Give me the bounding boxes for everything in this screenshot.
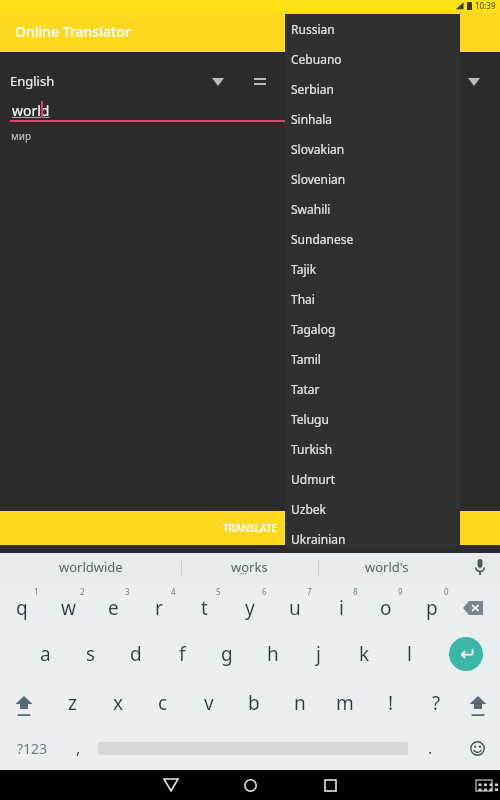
- button[interactable]: Shift: [2, 687, 46, 725]
- button[interactable]: Telugu: [285, 404, 460, 434]
- button[interactable]: 3: [102, 575, 152, 607]
- button[interactable]: c: [138, 687, 188, 719]
- button[interactable]: Tatar: [285, 374, 460, 404]
- button[interactable]: 0: [421, 575, 471, 607]
- button[interactable]: f: [157, 638, 207, 670]
- button[interactable]: world's: [319, 553, 454, 581]
- button[interactable]: Slovakian: [285, 134, 460, 164]
- button[interactable]: Slovenian: [285, 164, 460, 194]
- button[interactable]: Swap languages: [246, 68, 274, 94]
- staticText: o: [380, 595, 392, 621]
- button[interactable]: Udmurt: [285, 464, 460, 494]
- staticText: Slovenian: [291, 171, 346, 187]
- button[interactable]: 6: [239, 575, 289, 607]
- staticText: Online Translator: [15, 22, 131, 41]
- button[interactable]: works: [182, 553, 317, 581]
- staticText: Uzbek: [291, 501, 326, 517]
- button[interactable]: x: [93, 687, 143, 719]
- button[interactable]: p: [407, 592, 457, 624]
- staticText: u: [289, 595, 301, 621]
- button[interactable]: Uzbek: [285, 494, 460, 524]
- button[interactable]: Backspace: [450, 590, 495, 626]
- button[interactable]: n: [275, 687, 325, 719]
- button[interactable]: .: [410, 732, 450, 764]
- button[interactable]: English: [10, 68, 230, 94]
- staticText: p: [426, 595, 438, 621]
- button[interactable]: Sinhala: [285, 104, 460, 134]
- button[interactable]: ?: [411, 687, 461, 719]
- button[interactable]: 2: [57, 575, 107, 607]
- staticText: h: [267, 641, 279, 667]
- button[interactable]: Ukrainian: [285, 524, 460, 554]
- button[interactable]: g: [202, 638, 252, 670]
- button[interactable]: i: [316, 592, 366, 624]
- button[interactable]: Turkish: [285, 434, 460, 464]
- staticText: Tatar: [291, 381, 320, 397]
- button[interactable]: Enter: [449, 637, 483, 671]
- button[interactable]: e: [88, 592, 138, 624]
- button[interactable]: 5: [193, 575, 243, 607]
- button[interactable]: h: [248, 638, 298, 670]
- button[interactable]: 1: [11, 575, 61, 607]
- staticText: 4: [171, 586, 176, 597]
- button[interactable]: ?123: [2, 732, 62, 764]
- button[interactable]: TRANSLATE: [0, 511, 500, 545]
- staticText: Serbian: [291, 81, 334, 97]
- button[interactable]: v: [184, 687, 234, 719]
- button[interactable]: 8: [330, 575, 380, 607]
- button[interactable]: 7: [284, 575, 334, 607]
- button[interactable]: t: [179, 592, 229, 624]
- button[interactable]: l: [384, 638, 434, 670]
- button[interactable]: w: [43, 592, 93, 624]
- button[interactable]: Swahili: [285, 194, 460, 224]
- button[interactable]: ,: [56, 732, 100, 764]
- button[interactable]: Recents: [309, 770, 351, 800]
- button[interactable]: u: [270, 592, 320, 624]
- staticText: x: [113, 690, 124, 716]
- button[interactable]: 4: [148, 575, 198, 607]
- button[interactable]: Tagalog: [285, 314, 460, 344]
- staticText: r: [155, 595, 163, 621]
- button[interactable]: a: [20, 638, 70, 670]
- button[interactable]: Tamil: [285, 344, 460, 374]
- button[interactable]: y: [225, 592, 275, 624]
- staticText: q: [16, 595, 28, 621]
- button[interactable]: Shift: [456, 687, 500, 725]
- button[interactable]: Voice input: [466, 553, 494, 581]
- button[interactable]: Back: [150, 770, 192, 800]
- button[interactable]: Cebuano: [285, 44, 460, 74]
- button[interactable]: Home: [229, 770, 271, 800]
- button[interactable]: b: [229, 687, 279, 719]
- button[interactable]: !: [366, 687, 416, 719]
- button[interactable]: 9: [375, 575, 425, 607]
- staticText: world's: [365, 558, 409, 576]
- staticText: world: [12, 101, 50, 120]
- button[interactable]: Emoji: [456, 732, 498, 764]
- button[interactable]: o: [361, 592, 411, 624]
- staticText: g: [221, 641, 233, 667]
- staticText: w: [61, 595, 76, 621]
- button[interactable]: d: [111, 638, 161, 670]
- button[interactable]: Tajik: [285, 254, 460, 284]
- staticText: ,: [76, 737, 81, 759]
- button[interactable]: Sundanese: [285, 224, 460, 254]
- button[interactable]: q: [0, 592, 47, 624]
- button[interactable]: m: [320, 687, 370, 719]
- staticText: 6: [262, 586, 267, 597]
- button[interactable]: Russian: [285, 14, 460, 44]
- button[interactable]: Switch keyboard: [468, 770, 500, 800]
- button[interactable]: r: [134, 592, 184, 624]
- button[interactable]: j: [293, 638, 343, 670]
- staticText: Tamil: [291, 351, 321, 367]
- staticText: works: [231, 558, 268, 576]
- button[interactable]: z: [47, 687, 97, 719]
- button[interactable]: k: [339, 638, 389, 670]
- button[interactable]: s: [66, 638, 116, 670]
- staticText: 10:39: [475, 0, 496, 11]
- button[interactable]: Serbian: [285, 74, 460, 104]
- button[interactable]: worldwide: [16, 553, 166, 581]
- staticText: Sundanese: [291, 231, 354, 247]
- staticText: b: [248, 690, 260, 716]
- button[interactable]: Thai: [285, 284, 460, 314]
